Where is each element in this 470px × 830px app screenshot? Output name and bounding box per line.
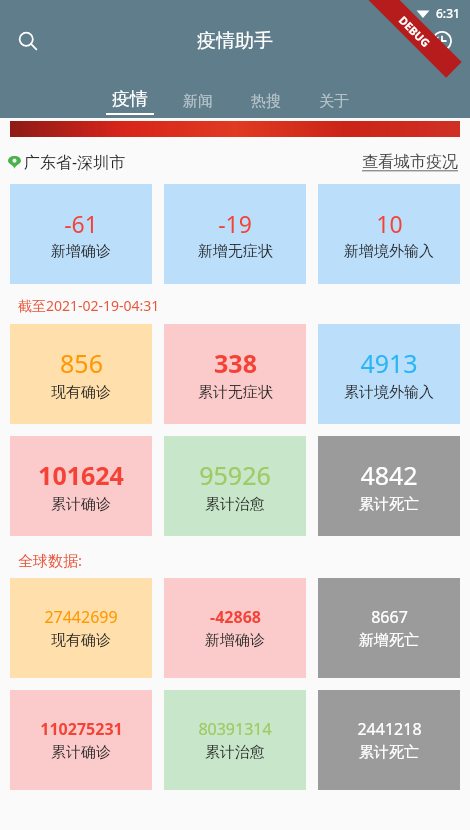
staticText: 新增无症状 [198, 242, 273, 261]
staticText: 80391314 [198, 718, 272, 740]
staticText: 856 [60, 346, 103, 380]
staticText: 累计无症状 [198, 383, 273, 402]
button[interactable]: 856 [10, 324, 152, 424]
button[interactable]: 4842 [318, 436, 460, 536]
staticText: 新闻 [183, 92, 213, 111]
staticText: 累计治愈 [205, 495, 265, 514]
button[interactable]: 新闻 [164, 92, 232, 118]
staticText: 热搜 [251, 92, 281, 111]
button[interactable]: -61 [10, 184, 152, 284]
staticText: 新增死亡 [359, 631, 419, 650]
staticText: 关于 [319, 92, 349, 111]
staticText: DEBUG [396, 13, 433, 50]
button[interactable]: -19 [164, 184, 306, 284]
staticText: -42868 [210, 606, 261, 628]
button[interactable]: 101624 [10, 436, 152, 536]
staticText: 新增确诊 [51, 242, 111, 261]
button[interactable]: 2441218 [318, 690, 460, 790]
staticText: 累计死亡 [359, 495, 419, 514]
staticText: 6:31 [436, 5, 460, 21]
button[interactable]: -42868 [164, 578, 306, 678]
staticText: 现有确诊 [51, 383, 111, 402]
button[interactable]: History [422, 26, 462, 56]
staticText: -19 [218, 208, 252, 239]
staticText: 10 [376, 208, 403, 239]
staticText: 累计境外输入 [344, 383, 434, 402]
staticText: -61 [64, 208, 98, 239]
staticText: 101624 [38, 458, 124, 492]
staticText: 累计治愈 [205, 743, 265, 762]
staticText: 新增确诊 [205, 631, 265, 650]
button[interactable]: 27442699 [10, 578, 152, 678]
staticText: 查看城市疫况 [362, 152, 458, 172]
button[interactable]: 8667 [318, 578, 460, 678]
staticText: 110275231 [40, 718, 123, 740]
staticText: 疫情助手 [197, 29, 273, 53]
button[interactable]: 95926 [164, 436, 306, 536]
staticText: 27442699 [44, 606, 118, 628]
staticText: 全球数据: [18, 550, 83, 570]
staticText: 95926 [199, 458, 271, 492]
staticText: 4913 [360, 346, 418, 380]
staticText: 新增境外输入 [344, 242, 434, 261]
button[interactable]: 110275231 [10, 690, 152, 790]
button[interactable]: 4913 [318, 324, 460, 424]
staticText: 2441218 [357, 718, 422, 740]
button[interactable]: 热搜 [232, 92, 300, 118]
staticText: 4842 [360, 458, 418, 492]
button[interactable]: 338 [164, 324, 306, 424]
staticText: 8667 [371, 606, 408, 628]
button[interactable]: Search [8, 26, 48, 56]
staticText: 338 [214, 346, 257, 380]
button[interactable]: 广东省-深圳市 [8, 149, 126, 175]
button[interactable]: 80391314 [164, 690, 306, 790]
button[interactable]: 查看城市疫况 [358, 150, 462, 174]
staticText: 累计确诊 [51, 495, 111, 514]
staticText: 广东省-深圳市 [24, 151, 126, 173]
staticText: 累计确诊 [51, 743, 111, 762]
button[interactable]: 关于 [300, 92, 368, 118]
staticText: 累计死亡 [359, 743, 419, 762]
button[interactable]: 疫情 [96, 88, 164, 118]
staticText: 疫情 [112, 88, 148, 111]
staticText: 截至2021-02-19-04:31 [18, 296, 160, 315]
button[interactable]: 10 [318, 184, 460, 284]
staticText: 现有确诊 [51, 631, 111, 650]
